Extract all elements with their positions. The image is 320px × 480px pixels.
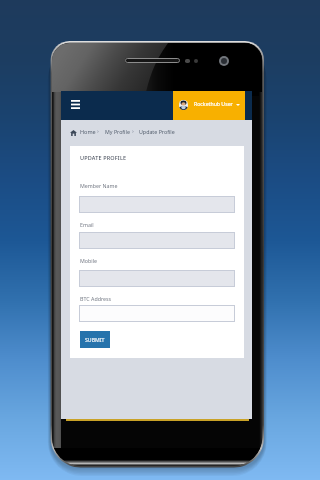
button[interactable]: My Profile (105, 128, 130, 135)
button[interactable]: Home (80, 128, 96, 135)
button[interactable] (79, 305, 235, 322)
button[interactable] (79, 232, 235, 249)
staticText: Mobile (80, 257, 97, 264)
staticText: › (97, 127, 99, 135)
button[interactable]: SUBMIT (80, 331, 110, 348)
button[interactable] (79, 196, 235, 213)
staticText: BTC Address (80, 295, 112, 302)
staticText: UPDATE PROFILE (80, 154, 127, 161)
staticText: Update Profile (139, 128, 175, 135)
staticText: › (132, 127, 134, 135)
button[interactable]: Rockethub User (173, 91, 245, 120)
staticText: Member Name (80, 182, 118, 189)
staticText: SUBMIT (85, 336, 105, 343)
staticText: Rockethub User (194, 100, 233, 107)
button[interactable]: Menu (61, 91, 89, 120)
staticText: Home (80, 128, 96, 135)
button[interactable] (79, 270, 235, 287)
staticText: Email (80, 221, 94, 228)
staticText: My Profile (105, 128, 130, 135)
